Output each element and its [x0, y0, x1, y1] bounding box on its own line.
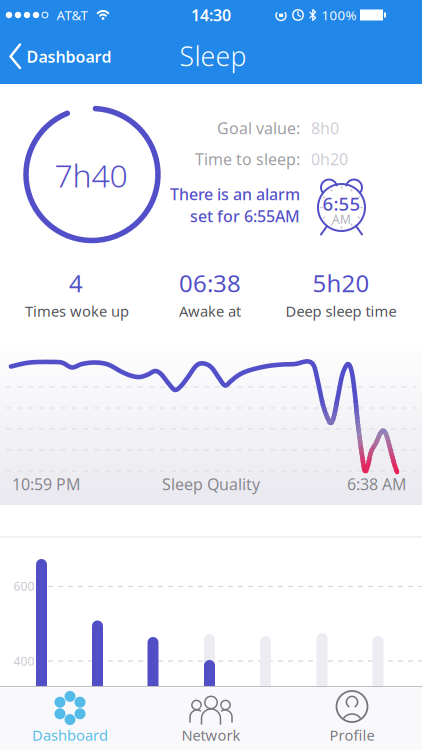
- staticText: 6:55: [322, 191, 360, 216]
- staticText: Dashboard: [32, 725, 108, 745]
- staticText: Dashboard: [26, 46, 111, 67]
- staticText: AT&T: [56, 6, 87, 24]
- staticText: There is an alarm: [170, 183, 300, 205]
- staticText: AM: [332, 211, 351, 227]
- staticText: Goal value:: [217, 117, 300, 139]
- staticText: 06:38: [179, 267, 241, 299]
- staticText: Profile: [329, 725, 374, 745]
- staticText: Time to sleep:: [195, 148, 300, 170]
- staticText: Deep sleep time: [285, 301, 396, 321]
- staticText: 5h20: [312, 267, 369, 299]
- button[interactable]: Dashboard: [0, 30, 130, 84]
- staticText: Times woke up: [25, 301, 129, 321]
- button[interactable]: Dashboard: [0, 686, 140, 750]
- staticText: 0h20: [311, 148, 348, 170]
- staticText: Sleep Quality: [162, 473, 260, 495]
- staticText: 6:38 AM: [347, 473, 407, 495]
- button[interactable]: Network: [141, 686, 281, 750]
- staticText: 7h40: [54, 154, 127, 196]
- staticText: 100%: [321, 6, 356, 24]
- staticText: 10:59 PM: [12, 473, 81, 495]
- staticText: Sleep: [179, 38, 246, 74]
- staticText: 4: [69, 267, 83, 299]
- button[interactable]: Profile: [282, 686, 422, 750]
- staticText: Awake at: [179, 301, 241, 321]
- staticText: Network: [181, 725, 240, 745]
- staticText: 400: [13, 653, 34, 669]
- staticText: set for 6:55AM: [190, 205, 300, 227]
- staticText: 14:30: [191, 4, 231, 26]
- staticText: 8h0: [311, 117, 339, 139]
- staticText: 600: [13, 578, 34, 594]
